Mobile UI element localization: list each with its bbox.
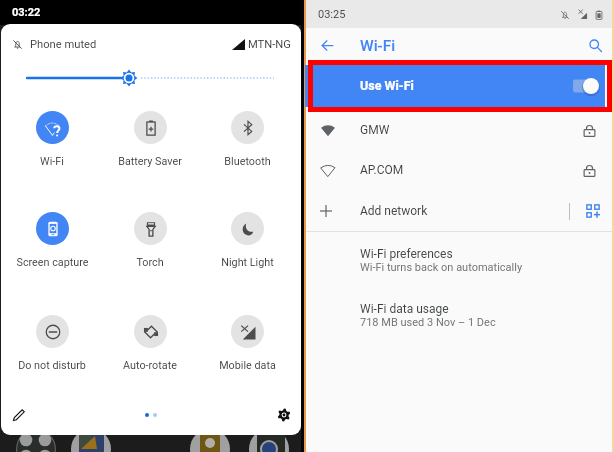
- staticText: Wi-Fi data usage: [360, 302, 449, 316]
- staticText: 03:22: [12, 6, 41, 19]
- staticText: Night Light: [221, 256, 274, 269]
- other: Phone muted: [12, 39, 23, 50]
- staticText: Screen capture: [16, 256, 89, 269]
- staticText: Wi-Fi: [360, 37, 396, 55]
- staticText: Wi-Fi turns back on automatically: [360, 261, 523, 274]
- button[interactable]: Wi-Fi data usage: [306, 301, 612, 341]
- button[interactable]: GMW: [306, 110, 612, 150]
- button[interactable]: Use Wi-Fi: [305, 65, 605, 107]
- staticText: Use Wi-Fi: [360, 78, 414, 93]
- button[interactable]: Search: [582, 32, 609, 59]
- staticText: 718 MB used 3 Nov – 1 Dec: [360, 316, 496, 329]
- button[interactable]: Screen capture: [4, 212, 100, 269]
- staticText: Wi-Fi preferences: [360, 247, 453, 261]
- staticText: Torch: [136, 256, 164, 269]
- button[interactable]: Mobile data: [199, 315, 295, 372]
- button[interactable]: Wi-Fi: [4, 111, 100, 168]
- staticText: AP.COM: [360, 163, 404, 177]
- staticText: Phone muted: [30, 38, 97, 51]
- staticText: Battery Saver: [118, 155, 182, 168]
- staticText: GMW: [360, 123, 390, 137]
- button[interactable]: Bluetooth: [199, 111, 295, 168]
- staticText: Wi-Fi: [40, 155, 64, 168]
- staticText: Add network: [360, 204, 428, 218]
- staticText: MTN-NG: [248, 38, 291, 51]
- staticText: Do not disturb: [18, 359, 86, 372]
- staticText: Mobile data: [219, 359, 276, 372]
- button[interactable]: Torch: [102, 212, 198, 269]
- button[interactable]: Wi-Fi preferences: [306, 246, 612, 286]
- button[interactable]: Scan QR code: [583, 201, 603, 221]
- button[interactable]: Edit: [7, 403, 31, 427]
- button[interactable]: Night Light: [199, 212, 295, 269]
- button[interactable]: AP.COM: [306, 150, 612, 190]
- button[interactable]: Battery Saver: [102, 111, 198, 168]
- button[interactable]: Settings: [272, 403, 296, 427]
- staticText: Bluetooth: [224, 155, 271, 168]
- staticText: 03:25: [318, 8, 346, 21]
- button[interactable]: Add network: [306, 191, 612, 231]
- staticText: Auto-rotate: [123, 359, 177, 372]
- button[interactable]: Auto-rotate: [102, 315, 198, 372]
- button[interactable]: Do not disturb: [4, 315, 100, 372]
- button[interactable]: Back: [315, 33, 340, 58]
